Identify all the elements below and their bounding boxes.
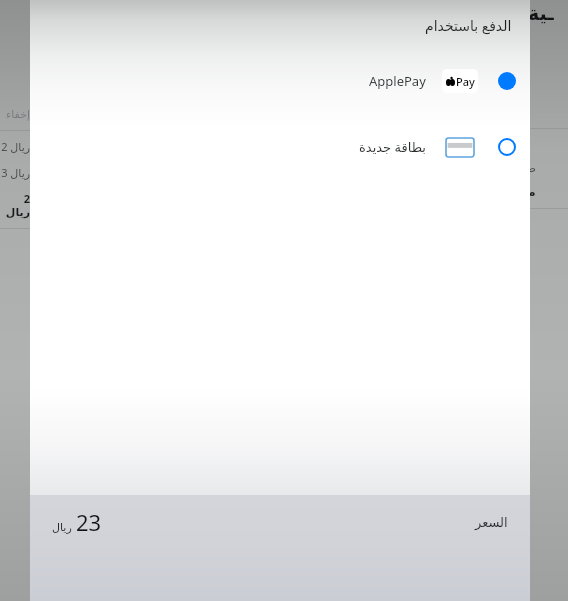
staticText: الدفع باستخدام (425, 16, 512, 35)
staticText: بطاقة جديدة (359, 138, 426, 156)
staticText: 2 ريال (0, 139, 30, 154)
other: Selected (498, 72, 516, 90)
staticText: مجمو (504, 185, 536, 199)
staticText: ApplePay (369, 72, 426, 90)
other: Not selected (498, 138, 516, 156)
staticText: ريال (52, 521, 72, 534)
other: Apple Pay (442, 69, 478, 93)
staticText: إعادة (504, 137, 530, 151)
staticText: ملخد (504, 104, 531, 119)
staticText: Pay (456, 74, 475, 89)
button[interactable]: ApplePay (30, 59, 530, 103)
staticText: إخفاء (0, 108, 30, 121)
staticText: ـية (528, 2, 554, 24)
staticText: السعر (475, 515, 508, 530)
button[interactable]: بطاقة جديدة (30, 125, 530, 169)
staticText: 3 ريال (0, 165, 30, 180)
staticText: ضريب (504, 161, 536, 175)
staticText: 2 ريال (0, 191, 30, 219)
staticText: 23 (76, 507, 102, 537)
other: New card (442, 135, 478, 159)
staticText: ما د (506, 30, 528, 49)
